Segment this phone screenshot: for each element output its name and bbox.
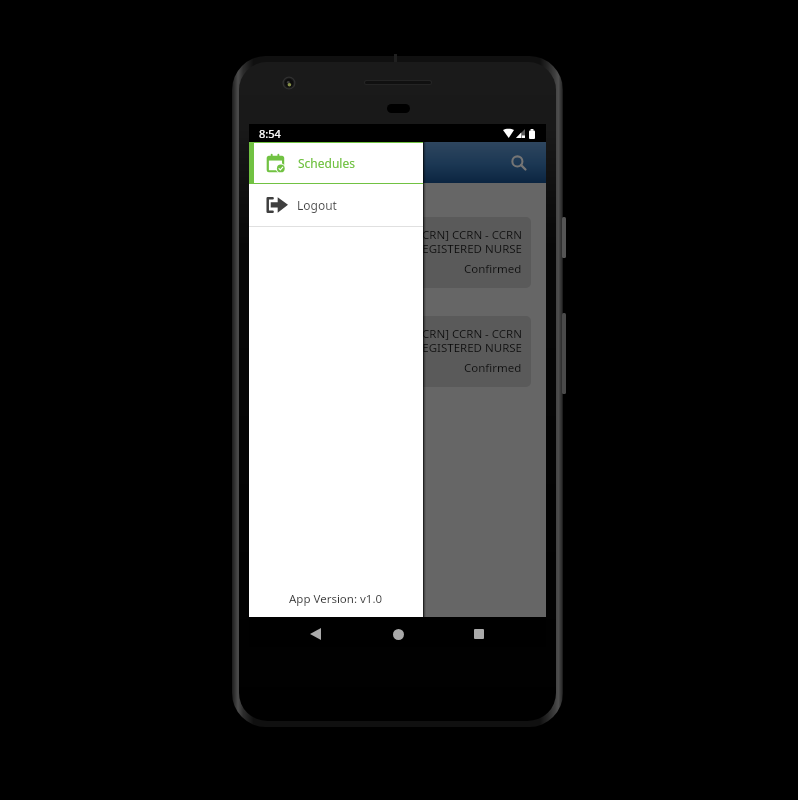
button[interactable]: Logout — [249, 184, 423, 226]
staticText: Schedules — [298, 155, 355, 171]
staticText: 8:54 — [259, 126, 281, 141]
staticText: App Version: v1.0 — [289, 591, 383, 607]
staticText: [CCRN] CCRN - CCRN REGISTERED NURSE — [276, 326, 522, 356]
button[interactable]: Back — [300, 619, 330, 649]
button[interactable]: Search — [502, 146, 536, 180]
button[interactable]: Recent apps — [464, 619, 494, 649]
staticText: [CCRN] CCRN - CCRN REGISTERED NURSE — [276, 227, 522, 257]
button[interactable]: [CCRN] CCRN - CCRN REGISTERED NURSE — [264, 316, 531, 387]
button[interactable]: Home — [383, 619, 413, 649]
staticText: Confirmed — [464, 261, 522, 277]
button[interactable]: Schedules — [254, 143, 423, 183]
staticText: Logout — [297, 197, 337, 213]
staticText: Confirmed — [464, 360, 522, 376]
button[interactable]: [CCRN] CCRN - CCRN REGISTERED NURSE — [264, 217, 531, 288]
